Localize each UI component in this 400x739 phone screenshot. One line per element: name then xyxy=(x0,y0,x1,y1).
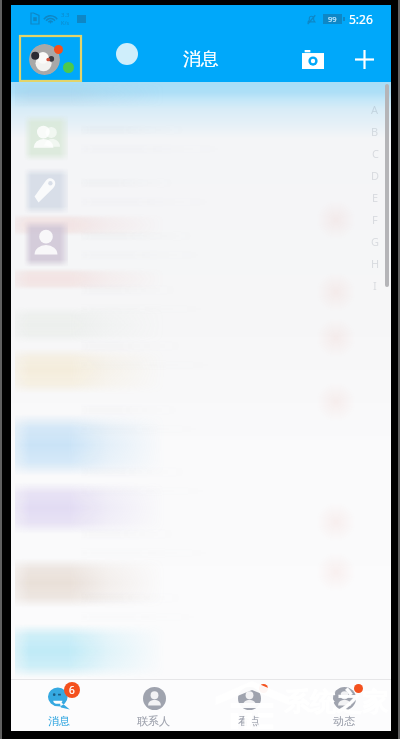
staticText: 6 xyxy=(69,683,75,697)
staticText: 动态 xyxy=(333,714,355,728)
staticText: 3.3 xyxy=(61,11,70,19)
staticText: E xyxy=(372,190,379,205)
staticText: A xyxy=(371,102,379,117)
staticText: D xyxy=(371,168,380,183)
staticText: G xyxy=(371,234,380,249)
button[interactable]: 6 xyxy=(11,680,106,731)
staticText: 消息 xyxy=(183,48,219,71)
staticText: www.xitongzhijia.net xyxy=(233,718,322,730)
staticText: K/s xyxy=(61,19,70,26)
button[interactable]: Profile xyxy=(19,35,82,82)
staticText: 看点 xyxy=(238,714,260,728)
staticText: C xyxy=(372,146,379,161)
button[interactable] xyxy=(24,221,68,267)
staticText: I xyxy=(373,278,377,293)
staticText: 系统之家 xyxy=(284,686,388,719)
staticText: 5:26 xyxy=(349,11,373,27)
button[interactable] xyxy=(24,168,68,214)
staticText: H xyxy=(371,256,380,271)
button[interactable]: Add xyxy=(344,39,384,79)
staticText: 联系人 xyxy=(137,714,170,728)
button[interactable]: 联系人 xyxy=(106,680,201,731)
button[interactable]: Camera xyxy=(293,39,333,79)
staticText: 99 xyxy=(328,14,337,24)
staticText: B xyxy=(371,124,379,139)
button[interactable]: 看点 xyxy=(201,680,296,731)
staticText: F xyxy=(372,212,378,227)
button[interactable] xyxy=(24,115,68,161)
staticText: 消息 xyxy=(48,714,70,728)
button[interactable]: 动态 xyxy=(296,680,391,731)
